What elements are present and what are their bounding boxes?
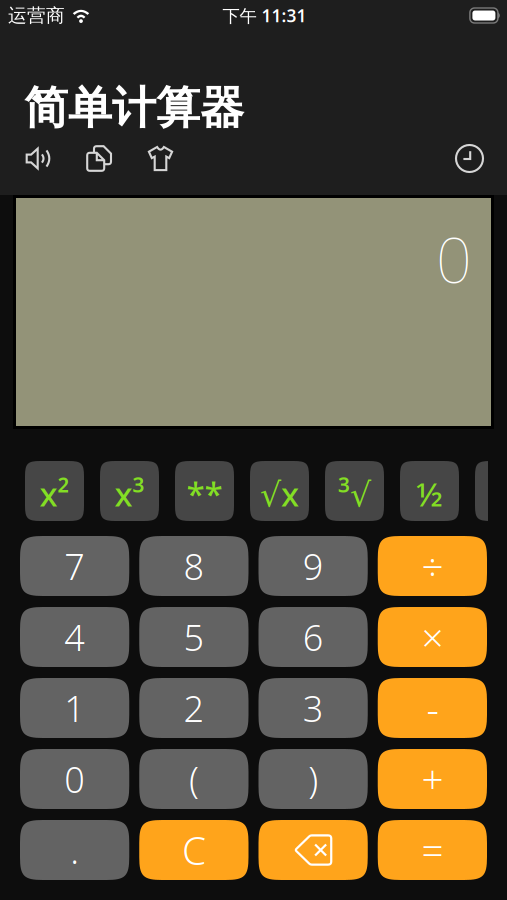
staticText: √x: [260, 471, 299, 516]
button[interactable]: 4: [20, 607, 129, 667]
staticText: ½: [416, 471, 443, 516]
staticText: 下午 11:31: [222, 4, 306, 27]
button[interactable]: 1: [20, 678, 129, 738]
staticText: +: [421, 753, 443, 805]
staticText: 1: [64, 684, 85, 732]
button[interactable]: ½: [400, 461, 459, 521]
button[interactable]: 3: [258, 678, 368, 738]
staticText: x³: [114, 471, 144, 516]
button[interactable]: Sound: [8, 139, 69, 178]
button[interactable]: 0: [20, 749, 129, 809]
staticText: 6: [303, 613, 324, 661]
staticText: **: [186, 471, 222, 516]
staticText: 8: [183, 542, 204, 590]
button[interactable]: Theme: [130, 139, 191, 178]
button[interactable]: 2: [139, 678, 248, 738]
staticText: C: [182, 824, 206, 876]
button[interactable]: Copy: [69, 139, 130, 178]
button[interactable]: π: [475, 461, 507, 521]
button[interactable]: ): [258, 749, 368, 809]
staticText: 运营商: [8, 4, 65, 27]
staticText: 0: [64, 755, 85, 803]
button[interactable]: 5: [139, 607, 248, 667]
button[interactable]: Delete: [258, 820, 368, 880]
button[interactable]: ×: [378, 607, 487, 667]
button[interactable]: √x: [250, 461, 309, 521]
button[interactable]: C: [139, 820, 248, 880]
staticText: ): [308, 755, 318, 803]
staticText: 0: [436, 217, 472, 300]
staticText: ×: [421, 611, 443, 663]
staticText: (: [189, 755, 199, 803]
staticText: x²: [39, 471, 69, 516]
staticText: -: [426, 682, 438, 734]
staticText: 2: [183, 684, 204, 732]
staticText: =: [421, 824, 443, 876]
staticText: 4: [64, 613, 85, 661]
staticText: ÷: [421, 540, 443, 592]
button[interactable]: **: [175, 461, 234, 521]
staticText: 3: [303, 684, 324, 732]
staticText: .: [70, 826, 79, 874]
button[interactable]: History: [439, 139, 500, 178]
staticText: 7: [64, 542, 85, 590]
staticText: 简单计算器: [24, 81, 244, 135]
button[interactable]: x²: [25, 461, 84, 521]
staticText: 9: [303, 542, 324, 590]
button[interactable]: ³√: [325, 461, 384, 521]
button[interactable]: 8: [139, 536, 248, 596]
button[interactable]: 9: [258, 536, 368, 596]
button[interactable]: -: [378, 678, 487, 738]
button[interactable]: 6: [258, 607, 368, 667]
button[interactable]: .: [20, 820, 129, 880]
button[interactable]: x³: [100, 461, 159, 521]
staticText: ³√: [338, 471, 371, 516]
staticText: 5: [183, 613, 204, 661]
button[interactable]: +: [378, 749, 487, 809]
button[interactable]: 7: [20, 536, 129, 596]
button[interactable]: (: [139, 749, 248, 809]
button[interactable]: ÷: [378, 536, 487, 596]
button[interactable]: =: [378, 820, 487, 880]
